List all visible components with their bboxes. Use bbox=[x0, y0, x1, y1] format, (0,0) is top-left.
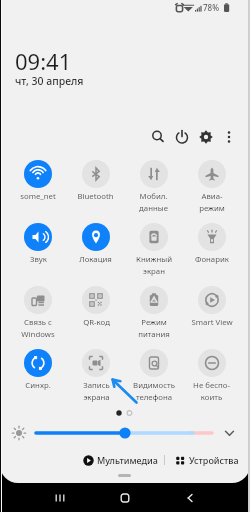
button[interactable]: Back bbox=[174, 483, 206, 512]
staticText: Мобил. данные bbox=[139, 191, 168, 213]
button[interactable]: Мультимедиа bbox=[81, 452, 160, 468]
button[interactable]: Bluetooth bbox=[67, 160, 124, 214]
staticText: Smart View bbox=[191, 317, 233, 328]
button[interactable]: Локация bbox=[67, 223, 124, 277]
staticText: Книжный экран bbox=[136, 254, 172, 276]
button[interactable]: Авиа- режим bbox=[183, 160, 240, 214]
staticText: some_net bbox=[20, 191, 56, 202]
button[interactable]: Не беспо- коить bbox=[183, 349, 240, 403]
button[interactable]: Settings bbox=[193, 124, 219, 150]
staticText: 78% bbox=[203, 2, 219, 13]
button[interactable]: Связь с Windows bbox=[9, 286, 66, 340]
staticText: Режим питания bbox=[138, 317, 170, 339]
staticText: Локация bbox=[79, 254, 112, 265]
staticText: Не беспо- коить bbox=[193, 380, 230, 402]
button[interactable]: Режим питания bbox=[125, 286, 182, 340]
button[interactable]: Home bbox=[109, 483, 141, 512]
staticText: Видимость телефона bbox=[133, 380, 175, 402]
button[interactable]: Фонарик bbox=[183, 223, 240, 277]
staticText: Фонарик bbox=[195, 254, 229, 265]
staticText: Звук bbox=[30, 254, 47, 265]
staticText: Мультимедиа bbox=[97, 454, 158, 466]
button[interactable]: Collapse panel bbox=[118, 474, 131, 477]
button[interactable]: Видимость телефона bbox=[125, 349, 182, 403]
staticText: Авиа- режим bbox=[199, 191, 225, 213]
staticText: Bluetooth bbox=[77, 191, 114, 202]
staticText: Устройства bbox=[189, 454, 239, 466]
staticText: Запись экрана bbox=[83, 380, 110, 402]
staticText: QR-код bbox=[83, 317, 110, 328]
button[interactable]: Recents bbox=[44, 483, 76, 512]
button[interactable]: Brightness bbox=[0, 423, 250, 443]
button[interactable]: Мобил. данные bbox=[125, 160, 182, 214]
button[interactable]: More options bbox=[216, 124, 242, 150]
button[interactable]: Устройства bbox=[173, 452, 241, 468]
button[interactable]: QR-код bbox=[67, 286, 124, 340]
button[interactable]: Книжный экран bbox=[125, 223, 182, 277]
button[interactable]: Звук bbox=[9, 223, 66, 277]
staticText: 09:41 bbox=[15, 46, 72, 76]
button[interactable]: Power bbox=[169, 124, 195, 150]
button[interactable]: Запись экрана bbox=[67, 349, 124, 403]
staticText: чт, 30 апреля bbox=[15, 74, 84, 88]
button[interactable]: Синхр. bbox=[9, 349, 66, 403]
button[interactable]: Search bbox=[145, 124, 171, 150]
staticText: Синхр. bbox=[25, 380, 51, 391]
button[interactable]: some_net bbox=[9, 160, 66, 214]
button[interactable]: Smart View bbox=[183, 286, 240, 340]
staticText: Связь с Windows bbox=[21, 317, 55, 339]
